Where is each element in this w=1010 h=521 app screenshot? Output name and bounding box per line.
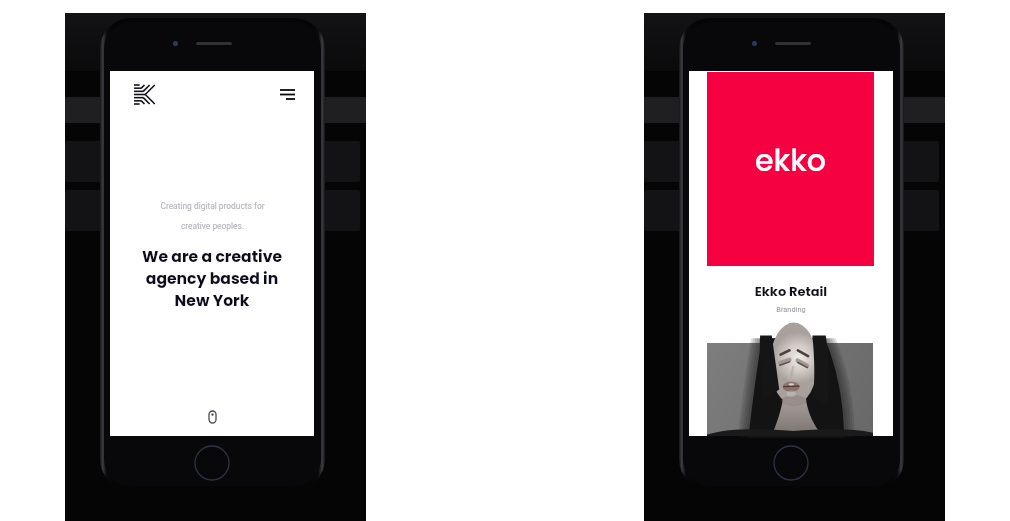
staticText: Ekko Retail (689, 282, 893, 300)
staticText: Creating digital products for creative p… (160, 201, 265, 231)
button[interactable]: Scroll down (209, 411, 216, 423)
staticText: We are a creative agency based in New Yo… (142, 246, 282, 311)
staticText: Branding (689, 305, 893, 314)
button[interactable]: Open menu (280, 89, 295, 100)
button[interactable]: Ekko logo (134, 85, 152, 104)
staticText: ekko (755, 140, 826, 182)
